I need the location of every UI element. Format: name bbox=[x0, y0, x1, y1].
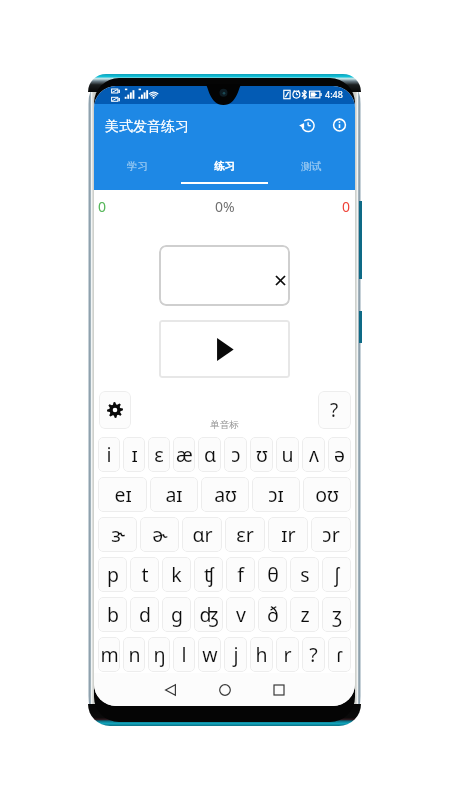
staticText: 4:48 bbox=[325, 88, 343, 100]
button[interactable]: 测试 bbox=[268, 144, 355, 190]
button[interactable]: ʊ bbox=[250, 437, 273, 472]
staticText: aɪ bbox=[165, 481, 183, 508]
button[interactable]: 练习 bbox=[181, 144, 268, 190]
button[interactable]: θ bbox=[258, 557, 287, 592]
staticText: z bbox=[300, 601, 310, 628]
button[interactable]: oʊ bbox=[303, 477, 351, 512]
staticText: w bbox=[202, 641, 218, 668]
button[interactable]: k bbox=[162, 557, 191, 592]
staticText: oʊ bbox=[315, 481, 339, 508]
staticText: 0 bbox=[98, 197, 107, 216]
button[interactable]: ð bbox=[258, 597, 287, 632]
button[interactable]: Settings bbox=[99, 391, 131, 429]
staticText: ŋ bbox=[153, 641, 166, 668]
button[interactable]: b bbox=[98, 597, 127, 632]
staticText: g bbox=[171, 601, 183, 628]
button[interactable]: ɑr bbox=[182, 517, 222, 552]
button[interactable]: f bbox=[226, 557, 255, 592]
staticText: u bbox=[281, 441, 294, 468]
staticText: 美式发音练习 bbox=[105, 118, 189, 136]
button[interactable]: ʌ bbox=[302, 437, 325, 472]
staticText: ð bbox=[267, 601, 279, 628]
staticText: i bbox=[106, 441, 112, 468]
button[interactable]: d bbox=[130, 597, 159, 632]
button[interactable]: ? bbox=[318, 391, 351, 429]
staticText: eɪ bbox=[114, 481, 132, 508]
button[interactable]: ɔr bbox=[311, 517, 351, 552]
button[interactable]: ɪ bbox=[123, 437, 145, 472]
other: Clear bbox=[275, 275, 285, 285]
button[interactable]: t bbox=[130, 557, 159, 592]
staticText: ʧ bbox=[204, 561, 214, 588]
staticText: l bbox=[181, 641, 187, 668]
button[interactable]: ɑ bbox=[198, 437, 221, 472]
staticText: k bbox=[171, 561, 182, 588]
button[interactable]: h bbox=[250, 637, 273, 672]
staticText: ɑ bbox=[204, 441, 216, 468]
button[interactable]: æ bbox=[173, 437, 195, 472]
button[interactable]: Back bbox=[157, 677, 183, 703]
button[interactable]: aʊ bbox=[201, 477, 249, 512]
staticText: m bbox=[100, 641, 119, 668]
button[interactable]: ɪr bbox=[268, 517, 308, 552]
button[interactable]: Play bbox=[159, 320, 290, 378]
staticText: d bbox=[139, 601, 151, 628]
staticText: r bbox=[283, 641, 292, 668]
button[interactable]: Recents bbox=[266, 677, 292, 703]
button[interactable]: w bbox=[198, 637, 221, 672]
staticText: ʊ bbox=[256, 441, 268, 468]
button[interactable]: z bbox=[290, 597, 319, 632]
button[interactable]: ɝ bbox=[98, 517, 137, 552]
staticText: j bbox=[233, 641, 239, 668]
button[interactable]: v bbox=[226, 597, 255, 632]
button[interactable]: ʃ bbox=[322, 557, 351, 592]
button[interactable]: Info bbox=[326, 112, 352, 138]
button[interactable]: ʤ bbox=[194, 597, 223, 632]
button[interactable]: r bbox=[276, 637, 299, 672]
button[interactable]: j bbox=[224, 637, 247, 672]
button[interactable]: ʒ bbox=[322, 597, 351, 632]
button[interactable]: l bbox=[173, 637, 195, 672]
button[interactable]: g bbox=[162, 597, 191, 632]
button[interactable]: ɔɪ bbox=[252, 477, 300, 512]
button[interactable]: ɔ bbox=[224, 437, 247, 472]
button[interactable]: 学习 bbox=[94, 144, 181, 190]
staticText: θ bbox=[267, 561, 279, 588]
staticText: æ bbox=[176, 441, 193, 468]
button[interactable]: ? bbox=[302, 637, 325, 672]
staticText: t bbox=[141, 561, 149, 588]
button[interactable]: ʧ bbox=[194, 557, 223, 592]
staticText: ʒ bbox=[332, 601, 342, 628]
staticText: ? bbox=[330, 397, 339, 423]
button[interactable]: u bbox=[276, 437, 299, 472]
button[interactable]: ə bbox=[328, 437, 351, 472]
staticText: ɛ bbox=[154, 441, 164, 468]
button[interactable]: i bbox=[98, 437, 120, 472]
button[interactable]: ɛr bbox=[225, 517, 265, 552]
button[interactable]: ɾ bbox=[328, 637, 351, 672]
button[interactable]: eɪ bbox=[98, 477, 147, 512]
button[interactable]: n bbox=[123, 637, 145, 672]
button[interactable]: p bbox=[98, 557, 127, 592]
staticText: ɚ bbox=[152, 521, 168, 548]
button[interactable]: History bbox=[294, 112, 320, 138]
staticText: ʃ bbox=[334, 561, 340, 588]
staticText: ʌ bbox=[309, 441, 319, 468]
button[interactable]: Home bbox=[212, 677, 238, 703]
button[interactable]: ɛ bbox=[148, 437, 170, 472]
button[interactable]: s bbox=[290, 557, 319, 592]
staticText: ɔɪ bbox=[268, 481, 284, 508]
staticText: ɪr bbox=[281, 521, 296, 548]
staticText: p bbox=[107, 561, 119, 588]
staticText: ɝ bbox=[111, 521, 125, 548]
staticText: ʤ bbox=[199, 601, 219, 628]
button[interactable]: ŋ bbox=[148, 637, 170, 672]
button[interactable]: Clear bbox=[159, 245, 290, 306]
staticText: ɑr bbox=[192, 521, 213, 548]
staticText: v bbox=[236, 601, 246, 628]
button[interactable]: m bbox=[98, 637, 120, 672]
staticText: 练习 bbox=[214, 160, 235, 173]
button[interactable]: ɚ bbox=[140, 517, 179, 552]
button[interactable]: aɪ bbox=[150, 477, 198, 512]
staticText: 0% bbox=[215, 197, 235, 216]
